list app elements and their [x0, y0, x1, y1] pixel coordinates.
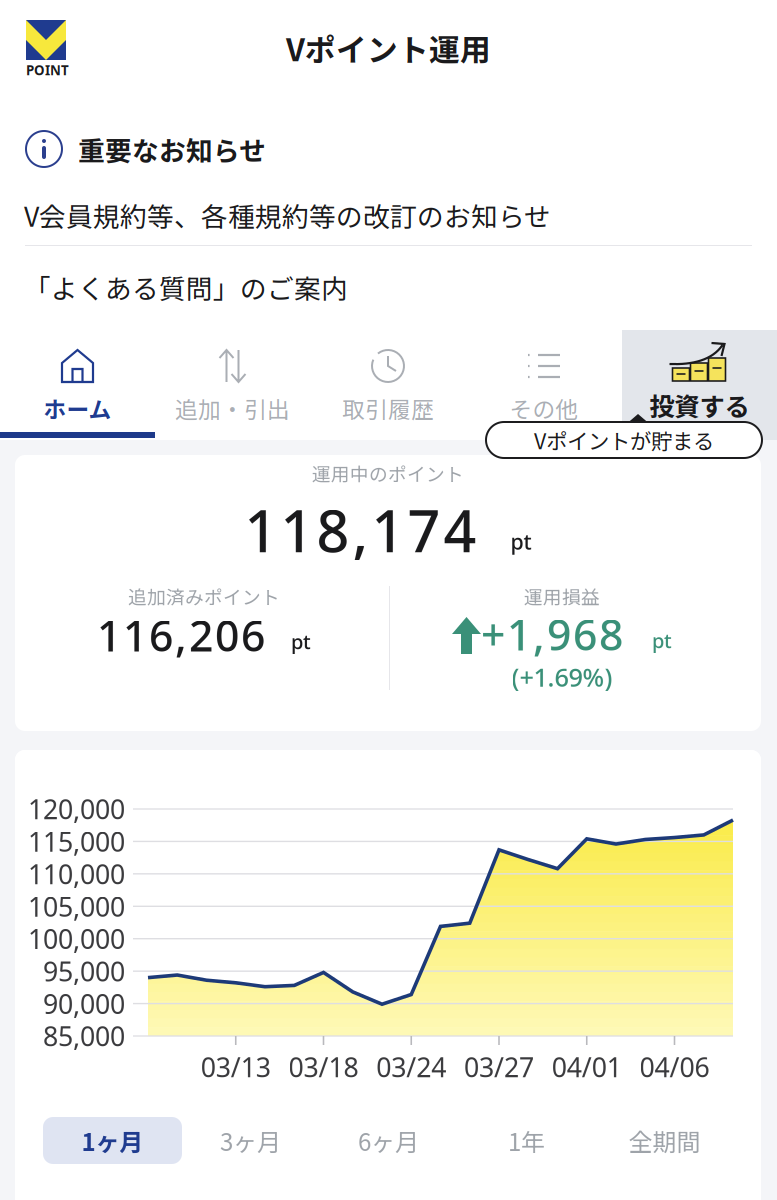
button[interactable]: Vポイント ホーム: [26, 20, 70, 78]
button[interactable]: 1ヶ月: [43, 1117, 182, 1164]
button[interactable]: 取引履歴: [310, 318, 466, 440]
button[interactable]: 重要なお知らせ: [0, 118, 777, 180]
staticText: Vポイント運用: [286, 26, 491, 70]
staticText: 116,206: [97, 606, 265, 664]
staticText: 03/18: [288, 1049, 358, 1085]
staticText: 115,000: [28, 823, 125, 860]
staticText: 110,000: [28, 856, 125, 892]
staticText: Vポイントが貯まる: [534, 425, 714, 455]
button[interactable]: 全期間: [595, 1117, 734, 1164]
staticText: 04/01: [552, 1049, 622, 1085]
staticText: ホーム: [43, 392, 111, 424]
staticText: pt: [510, 527, 531, 556]
staticText: V会員規約等、各種規約等の改訂のお知らせ: [24, 196, 551, 234]
staticText: POINT: [26, 61, 69, 79]
staticText: 追加済みポイント: [128, 582, 280, 609]
staticText: 100,000: [28, 921, 125, 957]
staticText: 投資する: [649, 387, 749, 423]
button[interactable]: ホーム: [0, 318, 155, 440]
staticText: (+1.69%): [511, 660, 612, 694]
button[interactable]: 6ヶ月: [319, 1117, 458, 1164]
staticText: 運用損益: [524, 582, 600, 609]
staticText: 3ヶ月: [220, 1123, 281, 1158]
button[interactable]: V会員規約等、各種規約等の改訂のお知らせ: [0, 186, 777, 244]
staticText: 「よくある質問」のご案内: [24, 268, 348, 306]
staticText: 120,000: [28, 791, 125, 827]
staticText: 90,000: [43, 985, 125, 1022]
staticText: 取引履歴: [342, 392, 434, 424]
staticText: 6ヶ月: [358, 1123, 419, 1158]
staticText: pt: [291, 628, 311, 655]
staticText: 運用中のポイント: [312, 459, 464, 486]
staticText: 追加・引出: [175, 392, 290, 424]
button[interactable]: 追加・引出: [155, 318, 310, 440]
button[interactable]: 投資する: [622, 318, 777, 440]
button[interactable]: その他: [466, 318, 622, 440]
button[interactable]: 1年: [457, 1117, 596, 1164]
staticText: pt: [652, 627, 672, 654]
staticText: その他: [509, 392, 578, 424]
staticText: 1ヶ月: [81, 1123, 143, 1158]
staticText: +1,968: [481, 605, 623, 663]
staticText: 重要なお知らせ: [78, 130, 266, 168]
staticText: 105,000: [28, 888, 125, 924]
button[interactable]: 3ヶ月: [181, 1117, 320, 1164]
staticText: 03/27: [464, 1049, 534, 1085]
button[interactable]: 「よくある質問」のご案内: [0, 256, 777, 318]
staticText: 全期間: [628, 1123, 700, 1158]
staticText: 04/06: [639, 1049, 709, 1085]
staticText: 03/24: [376, 1049, 446, 1085]
staticText: 118,174: [244, 491, 476, 569]
staticText: 95,000: [43, 953, 125, 989]
staticText: 03/13: [201, 1049, 271, 1085]
staticText: 1年: [508, 1123, 545, 1158]
staticText: 85,000: [43, 1018, 125, 1054]
